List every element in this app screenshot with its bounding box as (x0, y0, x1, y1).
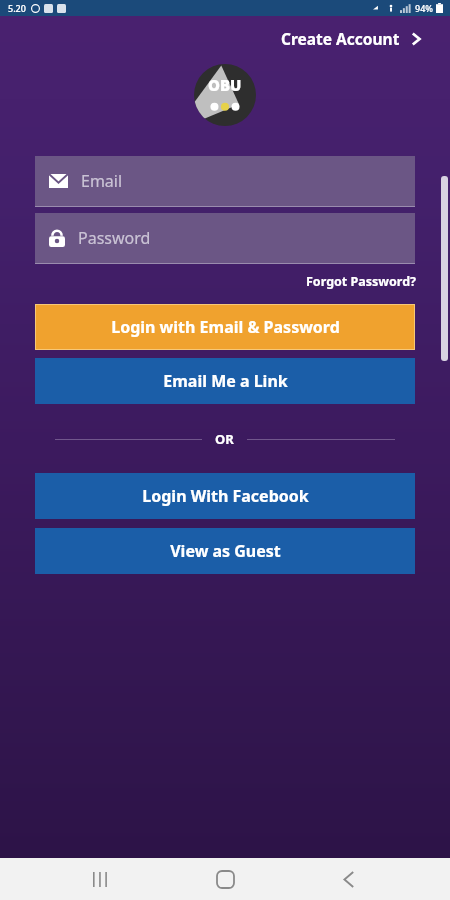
staticText: Password (78, 227, 151, 249)
button[interactable]: Email Me a Link (35, 358, 415, 404)
button[interactable]: Recent apps (78, 858, 124, 900)
staticText: Login with Email & Password (111, 316, 340, 338)
button[interactable]: View as Guest (35, 528, 415, 574)
staticText: Email (81, 170, 123, 192)
button[interactable]: Back (326, 858, 372, 900)
staticText: Email Me a Link (163, 370, 288, 392)
button[interactable]: Create Account (277, 24, 428, 53)
staticText: Forgot Password? (306, 273, 417, 290)
staticText: 5.20 (8, 2, 26, 14)
button[interactable]: Login With Facebook (35, 473, 415, 519)
button[interactable]: Email (35, 156, 415, 206)
staticText: View as Guest (170, 540, 281, 562)
staticText: Login With Facebook (142, 485, 309, 507)
button[interactable]: Login with Email & Password (35, 304, 415, 350)
button[interactable]: Forgot Password? (303, 270, 420, 293)
staticText: 94% (415, 2, 433, 14)
staticText: OBU (208, 75, 242, 95)
staticText: Create Account (281, 28, 400, 49)
staticText: OR (215, 430, 234, 448)
button[interactable]: Home (202, 858, 248, 900)
button[interactable]: Password (35, 213, 415, 263)
